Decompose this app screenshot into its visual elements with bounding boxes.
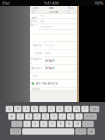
button[interactable]: N — [65, 121, 73, 127]
staticText: G — [44, 115, 46, 118]
button[interactable]: .?123 — [10, 128, 21, 135]
button[interactable]: P — [81, 106, 89, 112]
button[interactable]: A — [8, 113, 15, 120]
button[interactable]: mobile — [30, 42, 77, 49]
staticText: photo — [30, 20, 37, 27]
staticText: X — [34, 122, 36, 126]
button[interactable]: Done — [67, 6, 76, 14]
staticText: R — [34, 107, 36, 111]
button[interactable]: T — [39, 106, 47, 112]
button[interactable]: J — [59, 113, 66, 120]
button[interactable]: return — [84, 113, 97, 120]
staticText: Email — [44, 51, 50, 55]
staticText: ⌨ — [89, 130, 93, 133]
button[interactable]: add — [30, 18, 37, 25]
button[interactable]: V — [49, 121, 56, 127]
staticText: S — [20, 115, 21, 118]
staticText: D — [28, 115, 30, 118]
button[interactable]: ringtone — [30, 57, 77, 64]
staticText: A — [11, 115, 13, 118]
button[interactable]: C — [40, 121, 47, 127]
button[interactable]: X — [32, 121, 39, 127]
staticText: Cancel — [32, 6, 39, 13]
button[interactable]: .?123 — [75, 128, 86, 135]
staticText: add — [31, 16, 36, 20]
button[interactable]: add new address — [30, 80, 77, 87]
button[interactable]: H — [50, 113, 57, 120]
button[interactable]: Q — [6, 106, 13, 112]
staticText: B — [60, 122, 62, 126]
staticText: K — [70, 115, 72, 118]
staticText: F — [37, 115, 38, 118]
button[interactable]: O — [73, 106, 80, 112]
staticText: H — [53, 115, 55, 118]
button[interactable]: E — [22, 106, 30, 112]
staticText: Last — [40, 19, 44, 23]
staticText: notes — [32, 87, 40, 91]
button[interactable] — [30, 34, 77, 41]
staticText: New Contact — [48, 6, 58, 13]
button[interactable]: G — [42, 113, 49, 120]
staticText: ⇧ — [16, 122, 18, 125]
staticText: O — [76, 107, 78, 111]
button[interactable]: ⇧ — [11, 121, 22, 127]
button[interactable]: F — [33, 113, 41, 120]
staticText: iPad — [2, 0, 9, 6]
button[interactable]: R — [31, 106, 38, 112]
staticText: C — [43, 122, 45, 126]
staticText: I — [68, 107, 69, 111]
staticText: W — [17, 107, 19, 111]
staticText: .?123 — [77, 130, 85, 133]
staticText: L — [79, 115, 80, 118]
button[interactable]: U — [56, 106, 63, 112]
staticText: U — [59, 107, 61, 111]
staticText: ⇧ — [87, 122, 89, 125]
staticText: add new address — [36, 82, 58, 85]
button[interactable]: Z — [23, 121, 31, 127]
button[interactable]: I — [64, 106, 72, 112]
button[interactable]: ⌨ — [87, 128, 95, 135]
staticText: home — [34, 51, 42, 55]
staticText: T — [42, 107, 43, 111]
staticText: .?123 — [12, 130, 20, 133]
staticText: ringtone — [30, 57, 42, 64]
button[interactable]: D — [25, 113, 32, 120]
button[interactable]: M — [74, 121, 81, 127]
staticText: Default — [44, 66, 54, 70]
staticText: P — [84, 107, 86, 111]
button[interactable] — [22, 128, 74, 135]
button[interactable]: S — [17, 113, 24, 120]
button[interactable]: home — [30, 49, 77, 57]
button[interactable]: B — [57, 121, 64, 127]
staticText: Default — [44, 59, 54, 62]
staticText: First — [40, 14, 45, 17]
staticText: N — [68, 122, 70, 126]
staticText: return — [86, 115, 95, 118]
button[interactable]: text tone — [30, 65, 77, 72]
staticText: › — [74, 66, 75, 71]
staticText: › — [74, 58, 75, 63]
staticText: URL — [32, 74, 37, 78]
staticText: text tone — [30, 66, 42, 70]
button[interactable]: W — [14, 106, 21, 112]
staticText: Company — [40, 25, 52, 28]
button[interactable]: Y — [48, 106, 55, 112]
staticText: M — [76, 122, 78, 126]
button[interactable]: ⌫ — [90, 106, 99, 112]
staticText: E — [26, 107, 27, 111]
staticText: V — [51, 122, 53, 126]
staticText: Q — [8, 107, 10, 111]
staticText: Y — [50, 107, 52, 111]
button[interactable]: ⇧ — [82, 121, 94, 127]
staticText: mobile — [32, 44, 42, 47]
button[interactable]: L — [75, 113, 83, 120]
button[interactable]: K — [67, 113, 74, 120]
staticText: ⌫ — [92, 107, 96, 110]
staticText: 9:41 AM — [44, 0, 59, 6]
staticText: Z — [26, 122, 28, 126]
button[interactable]: Cancel — [31, 6, 40, 14]
button[interactable]: URL — [30, 72, 77, 79]
button[interactable]: notes — [30, 87, 77, 90]
staticText: Phone — [44, 44, 54, 47]
